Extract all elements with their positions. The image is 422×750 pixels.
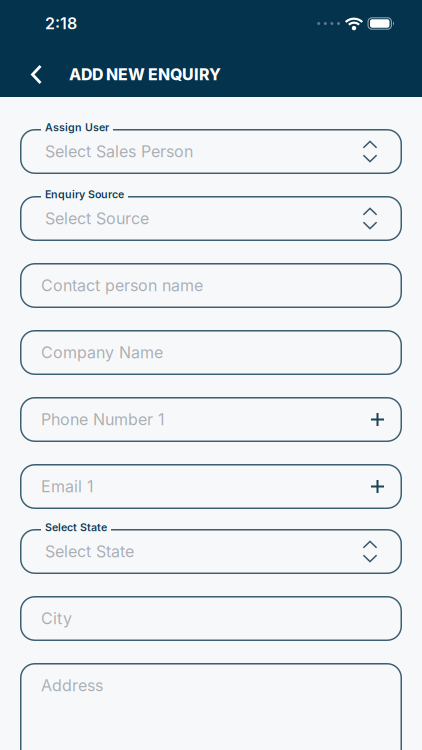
button[interactable]: Back <box>0 64 42 84</box>
button[interactable]: Select Sales Person <box>20 129 402 174</box>
button[interactable]: Add email <box>365 474 390 499</box>
staticText: Phone Number 1 <box>41 410 165 429</box>
button[interactable]: Email 1 <box>20 464 402 509</box>
button[interactable]: Add phone number <box>365 407 390 432</box>
staticText: Email 1 <box>41 477 94 496</box>
button[interactable]: Select State <box>20 529 402 574</box>
button[interactable]: Phone Number 1 <box>20 397 402 442</box>
staticText: Select Source <box>45 209 149 228</box>
staticText: Enquiry Source <box>45 188 124 201</box>
staticText: Address <box>41 676 103 695</box>
staticText: 2:18 <box>45 14 77 33</box>
button[interactable]: Select Source <box>20 196 402 241</box>
button[interactable]: City <box>20 596 402 641</box>
button[interactable]: Company Name <box>20 330 402 375</box>
button[interactable]: Address <box>20 663 402 750</box>
staticText: City <box>41 609 72 628</box>
staticText: Select State <box>45 521 107 534</box>
button[interactable]: Contact person name <box>20 263 402 308</box>
staticText: Company Name <box>41 343 163 362</box>
staticText: Contact person name <box>41 276 203 295</box>
staticText: ADD NEW ENQUIRY <box>69 65 221 84</box>
staticText: Select State <box>45 542 134 561</box>
staticText: Assign User <box>45 121 109 134</box>
staticText: Select Sales Person <box>45 142 193 161</box>
